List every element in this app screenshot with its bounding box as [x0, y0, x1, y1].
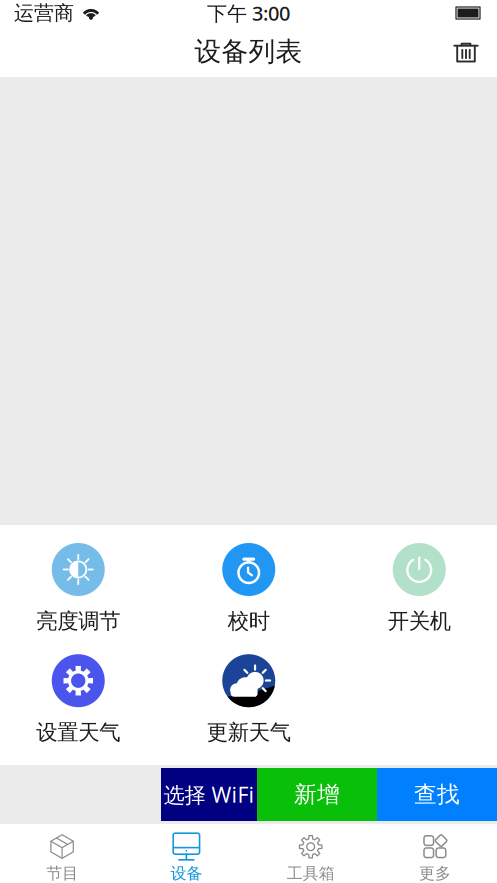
button[interactable]: 查找	[377, 768, 497, 821]
staticText: 更新天气	[207, 719, 291, 745]
staticText: 新增	[294, 781, 340, 808]
staticText: 设备	[170, 864, 202, 883]
staticText: 设置天气	[36, 719, 120, 745]
staticText: 查找	[414, 781, 460, 808]
staticText: 更多	[419, 864, 451, 883]
button[interactable]: 删除	[449, 34, 483, 68]
button[interactable]: 工具箱	[248, 824, 373, 883]
button[interactable]: 开关机	[334, 543, 497, 634]
button[interactable]: 更新天气	[163, 654, 334, 745]
staticText: 选择 WiFi	[163, 780, 254, 809]
staticText: 校时	[228, 608, 270, 634]
button[interactable]: 更多	[373, 824, 497, 883]
staticText: 开关机	[388, 608, 451, 634]
button[interactable]: 选择 WiFi	[161, 768, 257, 821]
staticText: 工具箱	[287, 864, 335, 883]
button[interactable]: 设备	[124, 824, 248, 883]
button[interactable]: 新增	[257, 768, 377, 821]
button[interactable]: 校时	[163, 543, 334, 634]
button[interactable]: 亮度调节	[0, 543, 163, 634]
button[interactable]: 设置天气	[0, 654, 163, 745]
staticText: 下午 3:00	[207, 0, 290, 26]
staticText: 运营商	[14, 1, 74, 25]
staticText: 节目	[46, 864, 78, 883]
button[interactable]: 节目	[0, 824, 124, 883]
staticText: 亮度调节	[36, 608, 120, 634]
staticText: 设备列表	[194, 35, 302, 68]
